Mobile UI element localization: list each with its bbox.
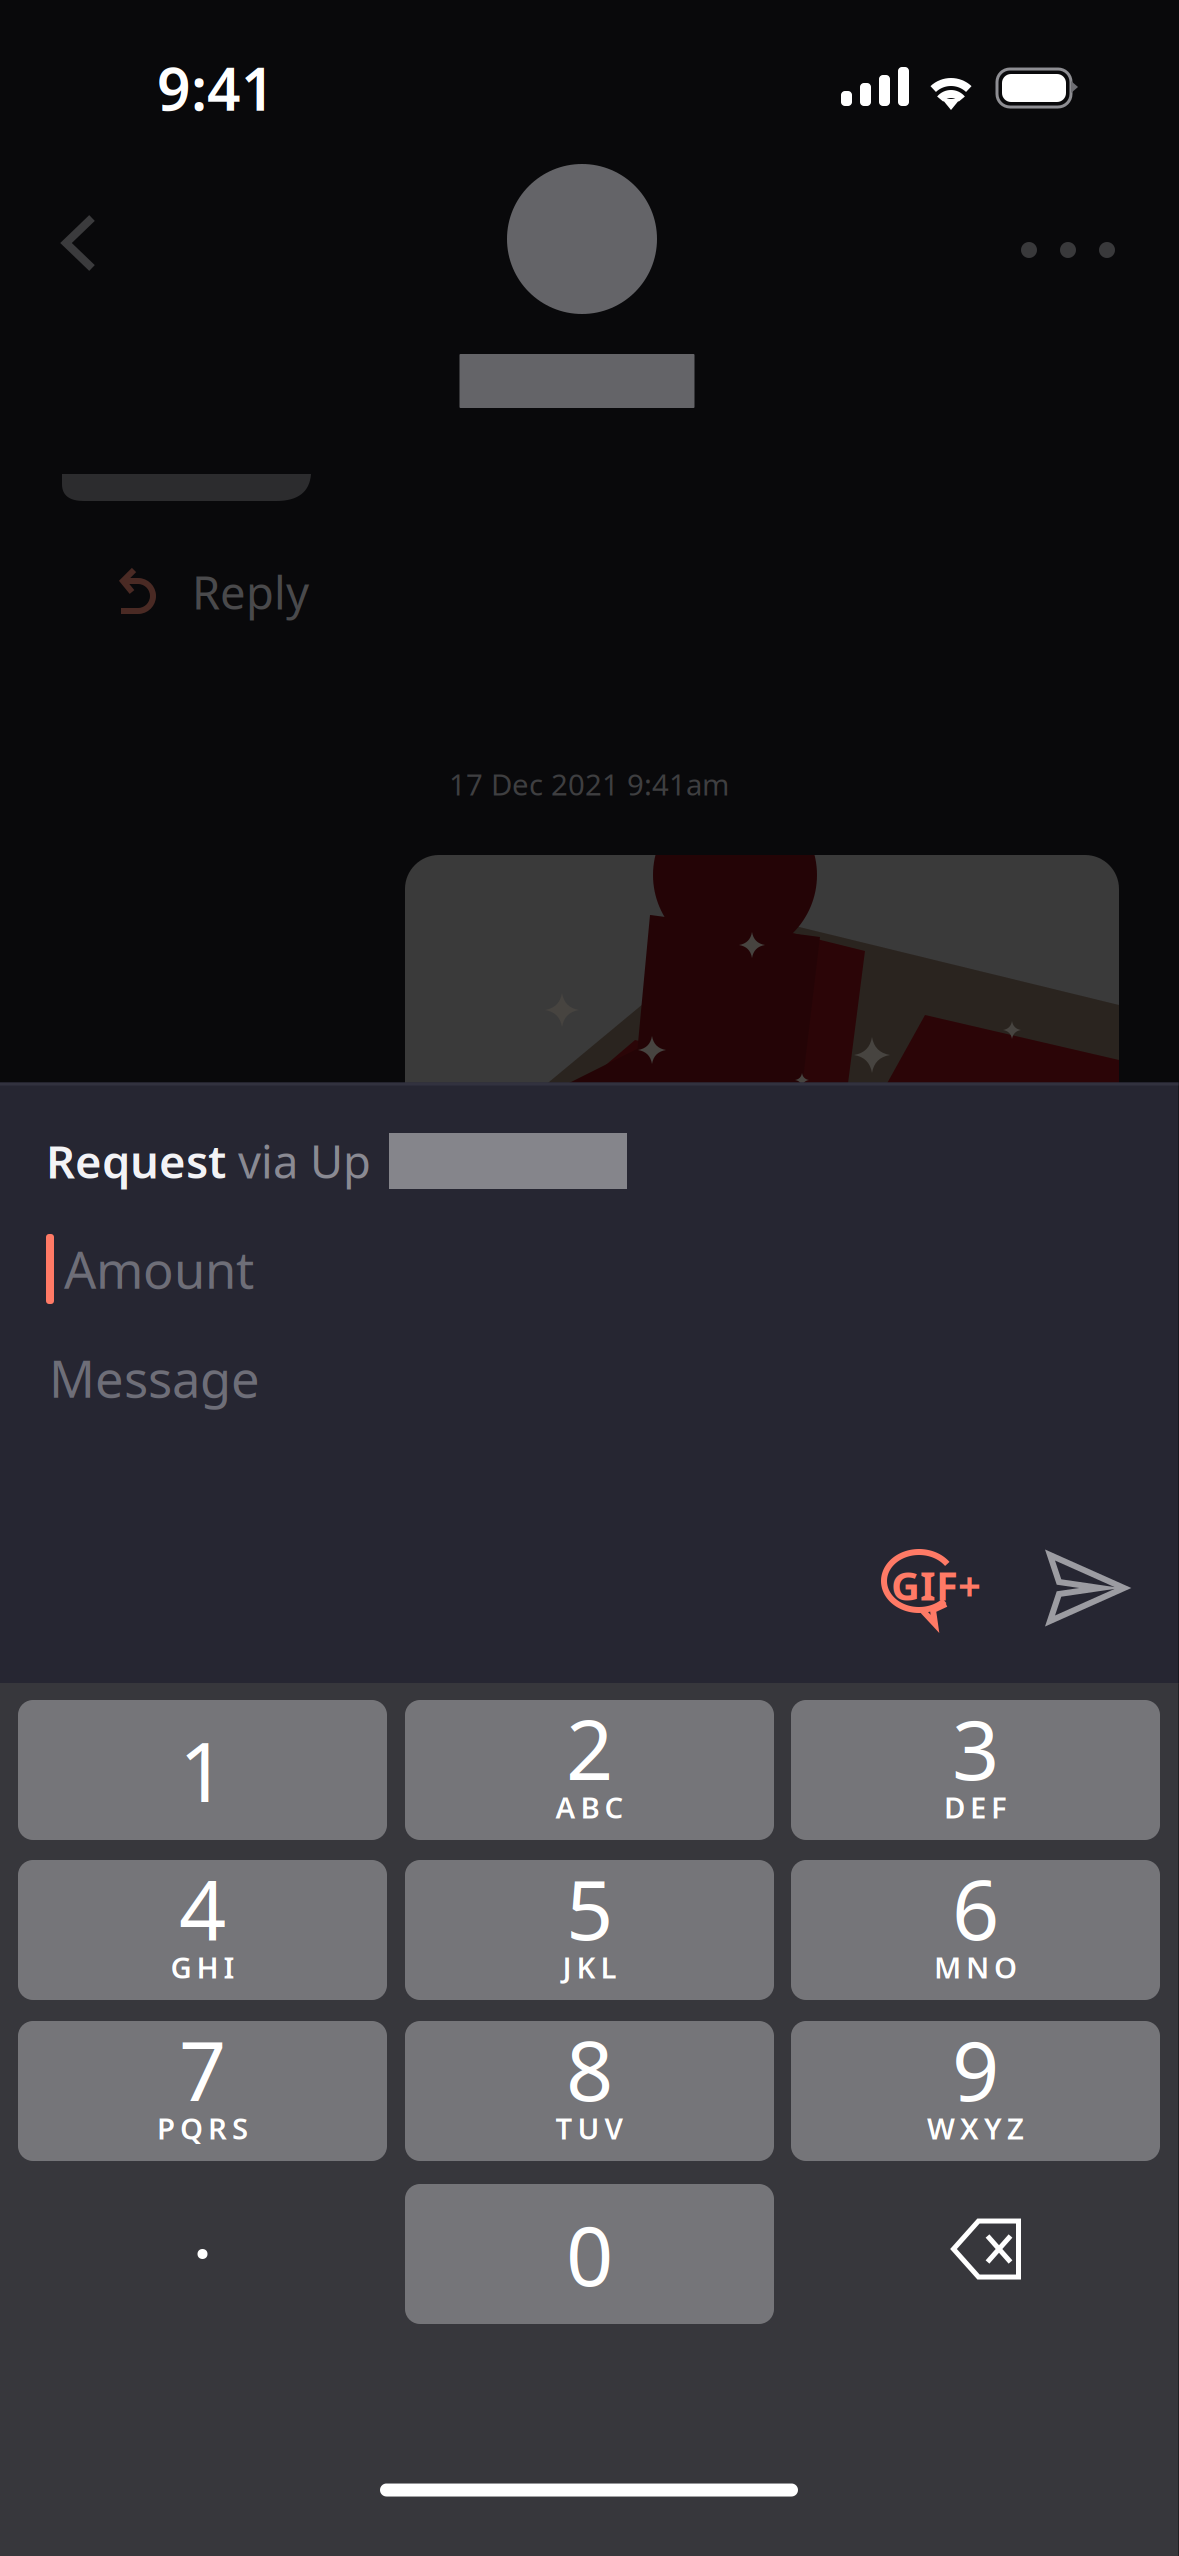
staticText: 6 [952, 1853, 999, 1963]
button[interactable]: 9 [791, 2021, 1160, 2161]
staticText: 4 [179, 1853, 226, 1963]
staticText: 3 [952, 1693, 999, 1803]
staticText: GIF+ [891, 1558, 981, 1611]
button[interactable]: 4 [18, 1860, 387, 2000]
staticText: D E F [944, 1787, 1007, 1826]
button[interactable]: 2 [405, 1700, 774, 1840]
staticText: Amount [64, 1235, 254, 1303]
staticText: 17 Dec 2021 9:41am [449, 764, 729, 803]
button[interactable]: Decimal point [18, 2183, 387, 2325]
button[interactable]: 0 [405, 2184, 774, 2324]
button[interactable]: Reply [112, 547, 392, 637]
staticText: M N O [934, 1947, 1017, 1986]
staticText: 9:41 [157, 49, 275, 127]
staticText: 7 [179, 2014, 226, 2124]
button[interactable]: 6 [791, 1860, 1160, 2000]
staticText: A B C [555, 1787, 623, 1826]
staticText: G H I [170, 1947, 234, 1986]
button[interactable]: Back [32, 188, 128, 298]
staticText: via Up [226, 1131, 371, 1191]
button[interactable]: 8 [405, 2021, 774, 2161]
button[interactable]: 1 [18, 1700, 387, 1840]
button[interactable]: Delete [791, 2183, 1160, 2325]
button[interactable]: 3 [791, 1700, 1160, 1840]
button[interactable]: More options [993, 205, 1143, 295]
button[interactable]: Add GIF [850, 1524, 1000, 1654]
staticText: W X Y Z [927, 2108, 1024, 2147]
button[interactable]: 5 [405, 1860, 774, 2000]
staticText: 9 [952, 2014, 999, 2124]
button[interactable]: Send [1013, 1524, 1163, 1654]
staticText: Message [49, 1344, 260, 1412]
staticText: Reply [192, 562, 309, 622]
button[interactable]: 7 [18, 2021, 387, 2161]
staticText: 1 [179, 1715, 226, 1825]
staticText: J K L [562, 1947, 616, 1986]
staticText: Request [46, 1131, 226, 1191]
staticText: 2 [566, 1693, 613, 1803]
staticText: T U V [555, 2108, 623, 2147]
staticText: P Q R S [157, 2108, 248, 2147]
staticText: 8 [566, 2014, 613, 2124]
staticText: 0 [566, 2199, 613, 2309]
staticText: 5 [566, 1853, 613, 1963]
